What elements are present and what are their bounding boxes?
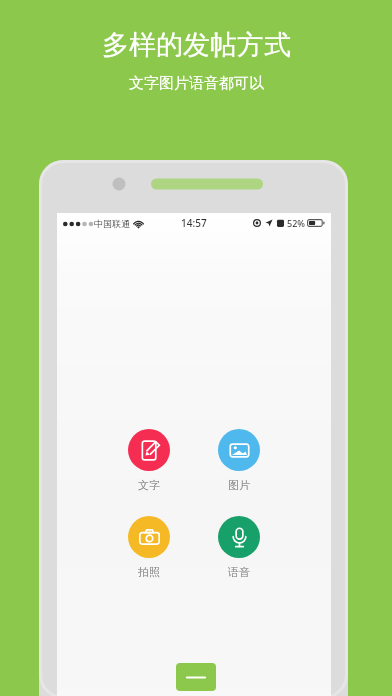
staticText: 拍照 bbox=[138, 565, 160, 579]
staticText: 文字 bbox=[138, 478, 160, 492]
staticText: 多样的发帖方式 bbox=[102, 28, 291, 62]
button[interactable]: Home bbox=[176, 663, 216, 691]
button[interactable]: 拍照 bbox=[128, 516, 170, 579]
staticText: 语音 bbox=[228, 565, 250, 579]
staticText: 文字图片语音都可以 bbox=[129, 74, 264, 93]
staticText: 52% bbox=[287, 217, 305, 229]
staticText: 14:57 bbox=[181, 216, 207, 230]
button[interactable]: 图片 bbox=[218, 429, 260, 492]
button[interactable]: 语音 bbox=[218, 516, 260, 579]
button[interactable]: 文字 bbox=[128, 429, 170, 492]
staticText: 图片 bbox=[228, 478, 250, 492]
staticText: 中国联通 bbox=[94, 218, 130, 229]
